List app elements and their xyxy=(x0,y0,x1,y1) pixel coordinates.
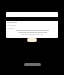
button[interactable]: Action xyxy=(27,38,37,42)
